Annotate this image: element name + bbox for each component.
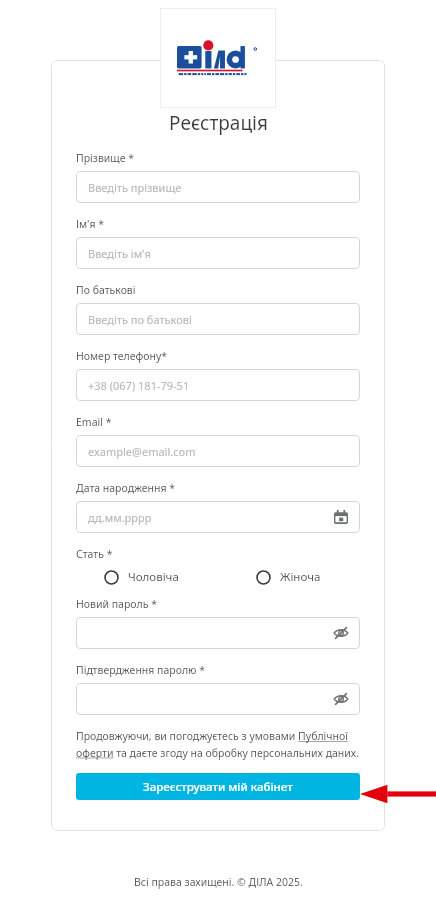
button[interactable]: Введіть по батькові: [76, 303, 360, 335]
button[interactable]: Показати пароль: [76, 683, 360, 715]
staticText: Дата народження *: [76, 481, 176, 495]
staticText: Всі права захищені. © ДІЛА 2025.: [134, 875, 303, 889]
staticText: example@email.com: [88, 444, 196, 459]
staticText: Реєстрація: [169, 110, 268, 136]
staticText: дд.мм.рррр: [88, 510, 152, 525]
staticText: Номер телефону*: [76, 349, 168, 363]
button[interactable]: Жіноча: [256, 569, 321, 585]
staticText: Жіноча: [280, 569, 321, 585]
button[interactable]: Обрати дату: [332, 508, 350, 526]
staticText: Продовжуючи, ви погоджуєтесь з умовами П…: [76, 729, 360, 760]
button[interactable]: Показати пароль: [332, 690, 350, 708]
staticText: По батькові: [76, 283, 136, 297]
button[interactable]: Введіть ім'я: [76, 237, 360, 269]
staticText: Стать *: [76, 547, 113, 561]
button[interactable]: Чоловіча: [104, 569, 179, 585]
staticText: +38 (067) 181-79-51: [88, 378, 190, 393]
staticText: Прізвище *: [76, 151, 135, 165]
staticText: Новий пароль *: [76, 597, 157, 611]
button[interactable]: +38 (067) 181-79-51: [76, 369, 360, 401]
staticText: Введіть по батькові: [88, 312, 192, 327]
staticText: Email *: [76, 415, 112, 429]
staticText: Чоловіча: [128, 569, 179, 585]
staticText: Введіть ім'я: [88, 246, 151, 261]
staticText: Введіть прізвище: [88, 180, 182, 195]
button[interactable]: Зареєструвати мій кабінет: [76, 773, 360, 800]
staticText: Зареєструвати мій кабінет: [143, 779, 293, 795]
staticText: Ім'я *: [76, 217, 104, 231]
button[interactable]: Введіть прізвище: [76, 171, 360, 203]
button[interactable]: Показати пароль: [76, 617, 360, 649]
staticText: Підтвердження паролю *: [76, 663, 205, 677]
button[interactable]: дд.мм.рррр: [76, 501, 360, 533]
button[interactable]: example@email.com: [76, 435, 360, 467]
button[interactable]: Показати пароль: [332, 624, 350, 642]
